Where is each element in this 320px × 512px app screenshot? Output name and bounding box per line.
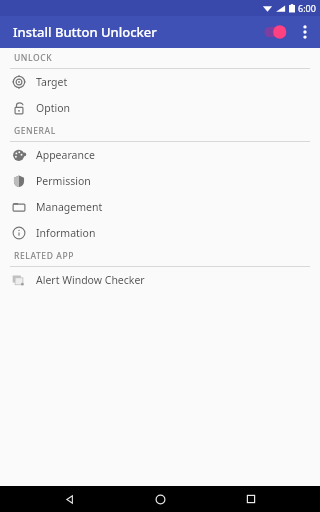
button[interactable]: More options <box>294 18 316 46</box>
staticText: Option <box>36 101 70 115</box>
staticText: 6:00 <box>298 2 316 14</box>
button[interactable]: Management <box>0 194 320 220</box>
staticText: Install Button Unlocker <box>13 23 157 41</box>
staticText: GENERAL <box>14 125 56 137</box>
button[interactable]: Home <box>143 486 177 512</box>
staticText: UNLOCK <box>14 52 53 64</box>
button[interactable]: Enable unlocker <box>258 20 292 44</box>
button[interactable]: Information <box>0 220 320 246</box>
button[interactable]: Option <box>0 95 320 121</box>
button[interactable]: Recent apps <box>234 486 268 512</box>
staticText: Appearance <box>36 148 95 162</box>
button[interactable]: Appearance <box>0 142 320 168</box>
button[interactable]: Back <box>52 486 86 512</box>
staticText: Management <box>36 200 103 214</box>
staticText: Alert Window Checker <box>36 273 145 287</box>
staticText: RELATED APP <box>14 250 75 262</box>
button[interactable]: Permission <box>0 168 320 194</box>
staticText: Information <box>36 226 96 240</box>
button[interactable]: Target <box>0 69 320 95</box>
staticText: Permission <box>36 174 91 188</box>
button[interactable]: Alert Window Checker <box>0 267 320 293</box>
staticText: Target <box>36 75 68 89</box>
